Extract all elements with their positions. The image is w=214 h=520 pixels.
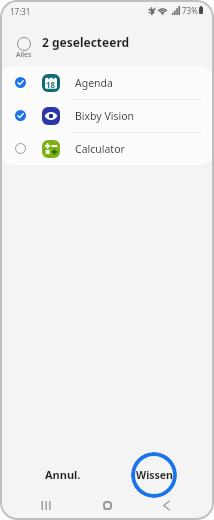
button[interactable]: Annul. bbox=[30, 461, 96, 487]
staticText: Annul. bbox=[45, 467, 81, 482]
button[interactable]: Back bbox=[152, 495, 180, 515]
button[interactable]: Home bbox=[93, 495, 121, 515]
staticText: Bixby Vision bbox=[75, 109, 135, 123]
staticText: Agenda bbox=[75, 76, 113, 90]
staticText: 17:31 bbox=[10, 6, 31, 17]
staticText: Calculator bbox=[75, 142, 125, 156]
staticText: 18 bbox=[46, 79, 56, 90]
staticText: Alles bbox=[16, 50, 32, 60]
button[interactable]: Recent apps bbox=[32, 495, 60, 515]
button[interactable]: Bixby Vision bbox=[0, 99, 214, 132]
button[interactable]: Calculator bbox=[0, 132, 214, 165]
staticText: 73% bbox=[182, 5, 198, 16]
button[interactable]: Wissen bbox=[131, 452, 177, 498]
staticText: 2 geselecteerd bbox=[42, 34, 130, 50]
button[interactable]: Alles selecteren bbox=[12, 33, 35, 62]
staticText: Wissen bbox=[136, 468, 173, 482]
button[interactable]: 18 bbox=[0, 66, 214, 99]
